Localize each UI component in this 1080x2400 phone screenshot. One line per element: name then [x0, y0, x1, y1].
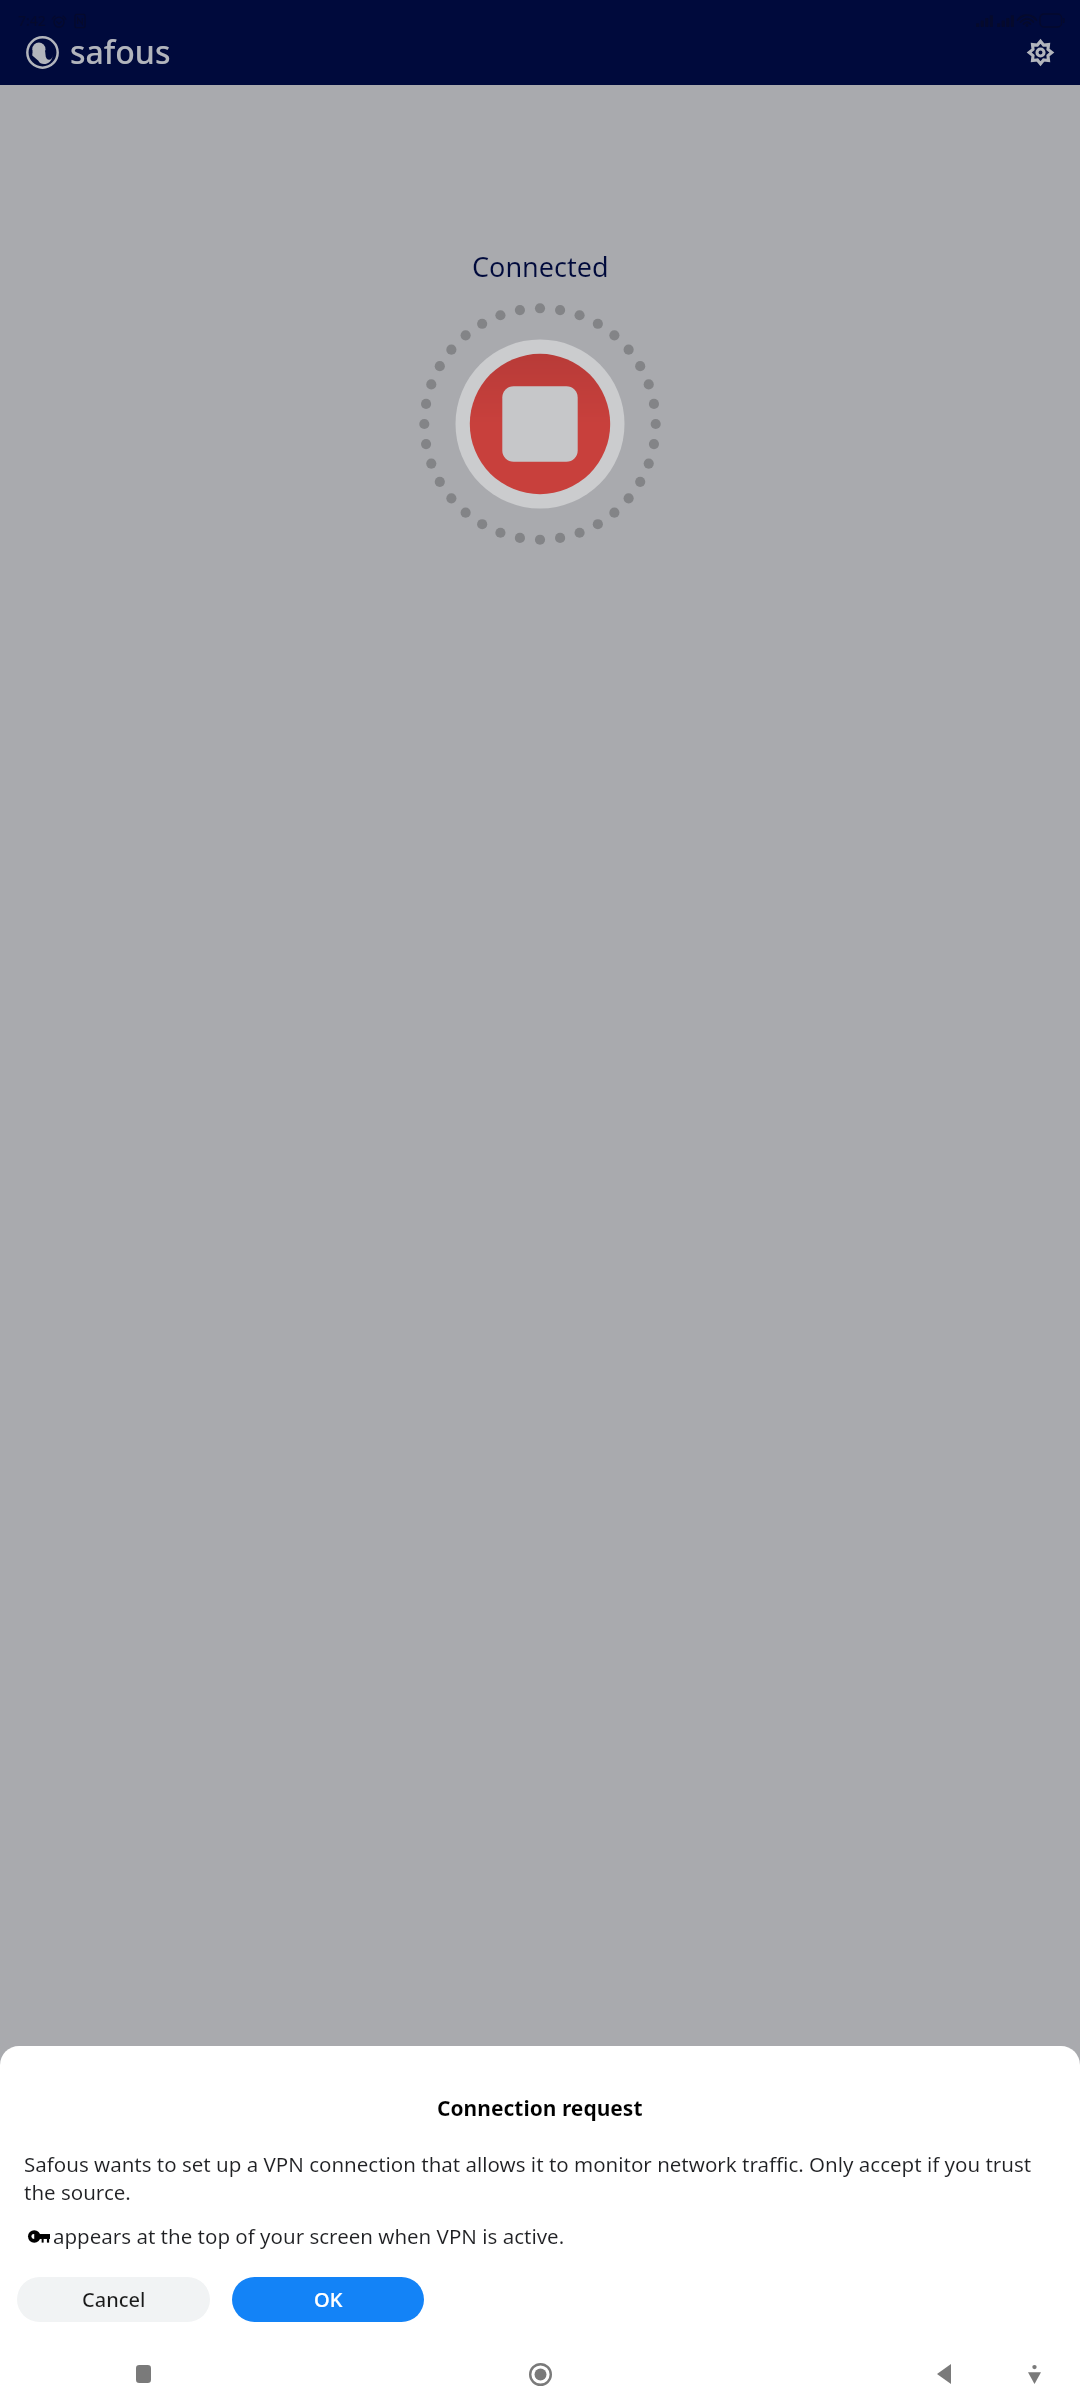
- staticText: Connection request: [437, 2094, 643, 2123]
- staticText: safous: [70, 30, 171, 74]
- button[interactable]: Recent apps: [119, 2350, 167, 2398]
- button[interactable]: Settings: [1018, 30, 1062, 74]
- button[interactable]: OK: [232, 2277, 424, 2322]
- staticText: Connected: [472, 248, 609, 285]
- button[interactable]: Cancel: [17, 2277, 210, 2322]
- button[interactable]: Home: [516, 2350, 564, 2398]
- staticText: OK: [314, 2286, 343, 2313]
- staticText: Safous wants to set up a VPN connection …: [24, 2150, 1060, 2206]
- staticText: Cancel: [82, 2286, 146, 2313]
- staticText: 7:42: [18, 11, 46, 30]
- staticText: appears at the top of your screen when V…: [53, 2222, 565, 2250]
- button[interactable]: Back: [920, 2350, 968, 2398]
- button[interactable]: Hide keyboard: [1012, 2352, 1056, 2396]
